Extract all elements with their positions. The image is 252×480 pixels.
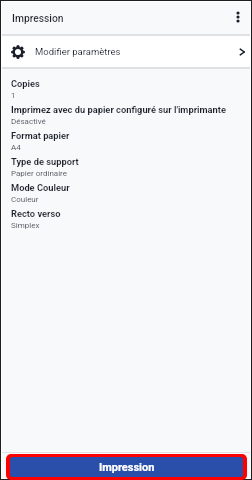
staticText: Impression — [12, 12, 64, 24]
staticText: Format papier — [11, 130, 70, 141]
staticText: A4 — [11, 143, 21, 152]
button[interactable]: Impression — [10, 457, 243, 477]
button[interactable]: More options — [224, 3, 252, 31]
staticText: Imprimez avec du papier configuré sur l'… — [11, 104, 226, 115]
button[interactable]: Imprimez avec du papier configuré sur l'… — [2, 104, 250, 130]
staticText: Impression — [99, 461, 155, 474]
button[interactable]: Format papier — [2, 130, 250, 156]
staticText: Couleur — [11, 195, 39, 204]
staticText: Désactivé — [11, 117, 46, 126]
staticText: 1 — [11, 91, 16, 100]
staticText: Modifier paramètres — [35, 46, 121, 57]
staticText: Recto verso — [11, 208, 61, 219]
staticText: Mode Couleur — [11, 182, 70, 193]
button[interactable]: Type de support — [2, 156, 250, 182]
staticText: Copies — [11, 78, 40, 89]
staticText: Type de support — [11, 156, 79, 167]
staticText: Simplex — [11, 221, 40, 230]
staticText: Papier ordinaire — [11, 169, 67, 178]
button[interactable]: Modifier paramètres — [2, 36, 250, 67]
button[interactable]: Mode Couleur — [2, 182, 250, 208]
button[interactable]: Copies — [2, 78, 250, 104]
button[interactable]: Recto verso — [2, 208, 250, 234]
